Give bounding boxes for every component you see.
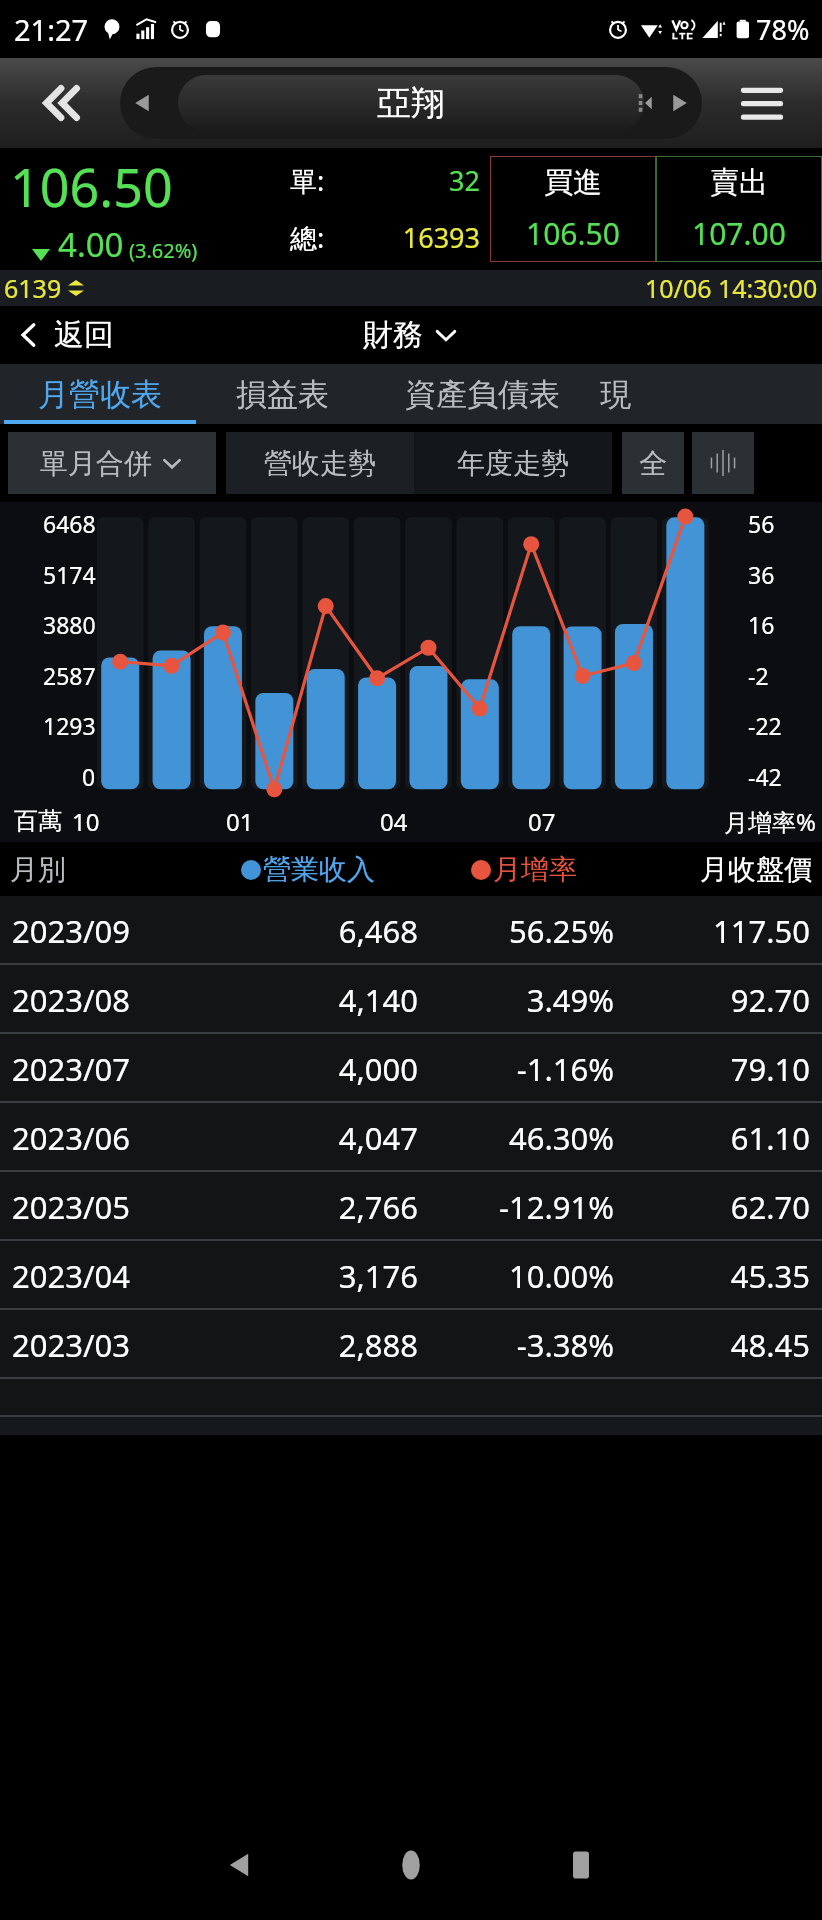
staticText: 返回 — [54, 316, 114, 354]
staticText: 6468 — [43, 508, 96, 539]
button[interactable]: 賣出 — [656, 156, 822, 262]
button[interactable]: 2023/05 — [0, 1172, 822, 1241]
button[interactable]: 營收走勢 — [226, 432, 414, 494]
staticText: 2587 — [43, 660, 96, 691]
button[interactable]: 財務 — [363, 316, 459, 354]
staticText: 56.25% — [418, 910, 614, 952]
staticText: 營收走勢 — [264, 446, 376, 481]
button[interactable]: 2023/08 — [0, 965, 822, 1034]
staticText: 16 — [748, 609, 775, 640]
staticText: 2,888 — [222, 1324, 418, 1366]
staticText: 107.00 — [692, 213, 786, 254]
staticText: 1293 — [43, 710, 96, 741]
button[interactable]: Chart settings — [692, 432, 754, 494]
button[interactable]: Menu — [702, 58, 822, 148]
staticText: 78% — [756, 11, 810, 48]
staticText: 單月合併 — [40, 446, 152, 481]
staticText: 4,047 — [222, 1117, 418, 1159]
staticText: 月收盤價 — [632, 852, 812, 887]
staticText: -42 — [748, 761, 782, 792]
button[interactable]: 全 — [622, 432, 684, 494]
button[interactable]: Back — [156, 1810, 326, 1920]
staticText: 資產負債表 — [405, 375, 560, 414]
staticText: 月增率 — [493, 852, 577, 887]
button[interactable]: 2023/03 — [0, 1310, 822, 1379]
staticText: 5174 — [43, 559, 96, 590]
staticText: 32 — [325, 162, 480, 199]
staticText: 2,766 — [222, 1186, 418, 1228]
staticText: 單: — [290, 162, 325, 199]
staticText: 損益表 — [236, 375, 329, 414]
staticText: 0 — [82, 761, 96, 792]
staticText: 21:27 — [14, 10, 89, 49]
button[interactable]: 年度走勢 — [414, 432, 612, 494]
button[interactable]: 資產負債表 — [365, 364, 600, 424]
button[interactable]: 亞翔 — [120, 67, 702, 139]
staticText: 月增率% — [724, 805, 816, 838]
staticText: 106.50 — [10, 151, 173, 222]
staticText: 04 — [380, 805, 408, 838]
staticText: 2023/05 — [12, 1186, 222, 1228]
button[interactable]: Home — [326, 1810, 496, 1920]
staticText: 亞翔 — [377, 82, 445, 125]
staticText: 92.70 — [614, 979, 810, 1021]
staticText: 買進 — [544, 164, 602, 201]
staticText: 106.50 — [526, 213, 620, 254]
staticText: 2023/07 — [12, 1048, 222, 1090]
staticText: 百萬 — [14, 806, 62, 836]
button[interactable]: 現 — [600, 364, 822, 424]
staticText: 48.45 — [614, 1324, 810, 1366]
staticText: 3880 — [43, 609, 96, 640]
staticText: 10 — [72, 805, 100, 838]
staticText: 3.49% — [418, 979, 614, 1021]
button[interactable]: 2023/09 — [0, 896, 822, 965]
staticText: 6,468 — [222, 910, 418, 952]
button[interactable]: 損益表 — [200, 364, 365, 424]
staticText: 6139 — [4, 271, 62, 305]
staticText: -12.91% — [418, 1186, 614, 1228]
staticText: (3.62%) — [129, 237, 198, 264]
staticText: 2023/06 — [12, 1117, 222, 1159]
staticText: 營業收入 — [263, 852, 375, 887]
button[interactable]: 買進 — [490, 156, 656, 262]
staticText: 現 — [600, 375, 631, 414]
staticText: 61.10 — [614, 1117, 810, 1159]
button[interactable]: 返回 — [14, 306, 114, 364]
button[interactable]: 月營收表 — [0, 364, 200, 424]
staticText: 62.70 — [614, 1186, 810, 1228]
staticText: 01 — [226, 805, 254, 838]
staticText: 2023/08 — [12, 979, 222, 1021]
staticText: 46.30% — [418, 1117, 614, 1159]
staticText: 4,000 — [222, 1048, 418, 1090]
staticText: 賣出 — [710, 164, 768, 201]
staticText: 36 — [748, 559, 775, 590]
button[interactable]: 2023/04 — [0, 1241, 822, 1310]
staticText: 07 — [528, 805, 556, 838]
staticText: 79.10 — [614, 1048, 810, 1090]
staticText: 4,140 — [222, 979, 418, 1021]
staticText: -2 — [748, 660, 769, 691]
staticText: -22 — [748, 710, 782, 741]
button[interactable]: 單月合併 — [8, 432, 216, 494]
staticText: -3.38% — [418, 1324, 614, 1366]
staticText: 16393 — [325, 219, 480, 256]
staticText: 月營收表 — [38, 375, 162, 414]
staticText: 財務 — [363, 316, 423, 354]
staticText: 2023/09 — [12, 910, 222, 952]
staticText: 月別 — [10, 852, 200, 887]
staticText: -1.16% — [418, 1048, 614, 1090]
staticText: 10.00% — [418, 1255, 614, 1297]
staticText: 2023/04 — [12, 1255, 222, 1297]
button[interactable]: Recents — [496, 1810, 666, 1920]
staticText: 2023/03 — [12, 1324, 222, 1366]
button[interactable]: Back — [0, 58, 120, 148]
staticText: 總: — [290, 219, 325, 256]
staticText: 全 — [639, 446, 667, 481]
button[interactable]: 2023/07 — [0, 1034, 822, 1103]
button[interactable]: 2023/06 — [0, 1103, 822, 1172]
staticText: 117.50 — [614, 910, 810, 952]
staticText: 10/06 14:30:00 — [645, 271, 818, 305]
staticText: 3,176 — [222, 1255, 418, 1297]
staticText: 年度走勢 — [457, 446, 569, 481]
staticText: 56 — [748, 508, 775, 539]
